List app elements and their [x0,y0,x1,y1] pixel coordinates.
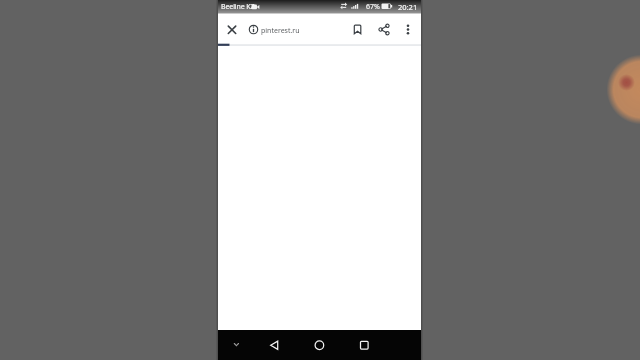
button[interactable] [373,17,396,42]
button[interactable] [352,333,377,358]
button[interactable] [262,333,287,358]
staticText: Beeline KZ [221,2,255,12]
button[interactable] [397,17,419,42]
staticText: 67% [366,2,380,12]
button[interactable] [245,16,303,44]
button[interactable] [307,333,332,358]
staticText: 20:21 [398,2,418,12]
button[interactable] [221,16,244,44]
button[interactable] [228,336,245,354]
button[interactable] [346,17,369,42]
staticText: pinterest.ru [261,26,300,36]
